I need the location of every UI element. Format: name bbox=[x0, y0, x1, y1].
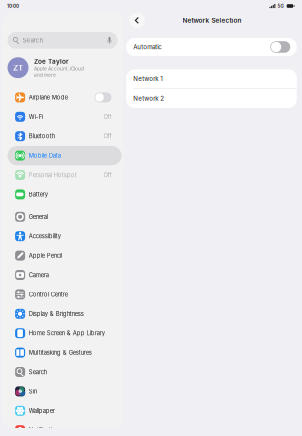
button[interactable]: Automatic bbox=[126, 38, 297, 56]
staticText: Battery bbox=[29, 191, 48, 198]
staticText: ZT bbox=[13, 63, 23, 73]
button[interactable]: Notifications bbox=[2, 420, 123, 436]
staticText: Wallpaper bbox=[29, 407, 55, 414]
staticText: General bbox=[29, 213, 48, 220]
staticText: Off bbox=[103, 133, 111, 140]
button[interactable]: Wallpaper bbox=[2, 401, 123, 420]
staticText: Off bbox=[103, 171, 111, 179]
staticText: Off bbox=[103, 113, 111, 120]
staticText: Zoe Taylor bbox=[34, 58, 69, 65]
button[interactable]: Airplane Mode bbox=[2, 88, 123, 107]
button[interactable]: Control Centre bbox=[2, 285, 123, 304]
staticText: Bluetooth bbox=[29, 133, 55, 140]
button[interactable]: Search bbox=[2, 362, 123, 382]
button[interactable]: Back bbox=[129, 12, 145, 28]
staticText: Siri bbox=[29, 388, 37, 395]
staticText: Multitasking & Gestures bbox=[29, 349, 92, 356]
button[interactable]: Bluetooth bbox=[2, 126, 123, 146]
button[interactable]: Personal Hotspot bbox=[2, 165, 123, 185]
button[interactable]: Battery bbox=[2, 185, 123, 204]
staticText: Control Centre bbox=[29, 291, 68, 298]
button[interactable]: Wi-Fi bbox=[2, 107, 123, 126]
staticText: Search bbox=[29, 368, 47, 376]
staticText: Network 1 bbox=[133, 75, 162, 82]
staticText: Airplane Mode bbox=[29, 94, 68, 101]
button[interactable]: General bbox=[2, 207, 123, 226]
staticText: Network 2 bbox=[133, 95, 164, 102]
staticText: Personal Hotspot bbox=[29, 171, 77, 179]
staticText: Notifications bbox=[29, 427, 62, 434]
staticText: and more bbox=[34, 72, 56, 78]
button[interactable]: Network 1 bbox=[126, 69, 297, 88]
button[interactable]: Home Screen & App Library bbox=[2, 323, 123, 343]
staticText: Display & Brightness bbox=[29, 310, 84, 317]
button[interactable]: Siri bbox=[2, 382, 123, 401]
staticText: Search bbox=[22, 37, 43, 44]
staticText: Mobile Data bbox=[29, 152, 61, 159]
button[interactable]: Accessibility bbox=[2, 226, 123, 246]
button[interactable]: Mobile Data bbox=[2, 146, 123, 165]
button[interactable]: ZT bbox=[2, 51, 123, 85]
staticText: Accessibility bbox=[29, 233, 61, 240]
button[interactable]: Camera bbox=[2, 265, 123, 285]
staticText: Wi-Fi bbox=[29, 113, 43, 120]
button[interactable]: Display & Brightness bbox=[2, 304, 123, 323]
staticText: Automatic bbox=[133, 43, 162, 51]
staticText: Network Selection bbox=[183, 16, 242, 24]
staticText: 10:00 bbox=[7, 3, 19, 9]
staticText: Apple Account, iCloud bbox=[34, 66, 84, 71]
staticText: Home Screen & App Library bbox=[29, 330, 105, 337]
button[interactable]: Multitasking & Gestures bbox=[2, 343, 123, 362]
staticText: 5G bbox=[277, 3, 283, 9]
staticText: Camera bbox=[29, 271, 49, 279]
button[interactable]: Network 2 bbox=[126, 89, 297, 108]
button[interactable]: Apple Pencil bbox=[2, 246, 123, 265]
staticText: Apple Pencil bbox=[29, 252, 62, 259]
